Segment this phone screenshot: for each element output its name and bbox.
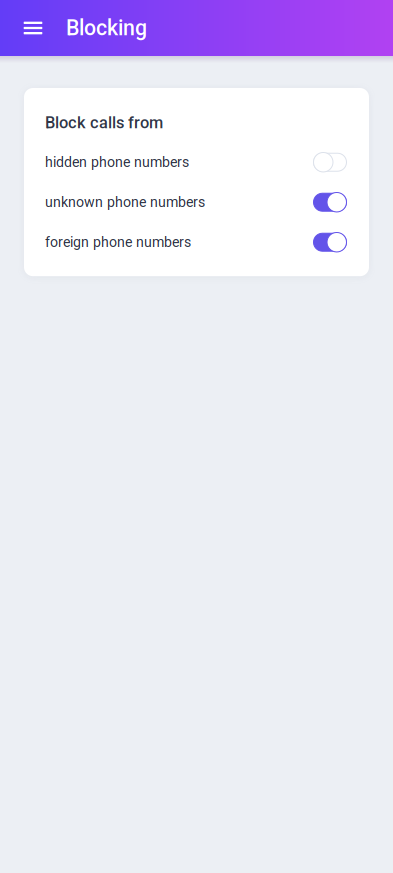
staticText: Blocking	[66, 15, 147, 40]
button[interactable]: Menu	[17, 6, 49, 50]
button[interactable]: unknown phone numbers	[24, 182, 369, 222]
staticText: Block calls from	[45, 113, 163, 132]
staticText: hidden phone numbers	[45, 154, 189, 170]
staticText: unknown phone numbers	[45, 194, 205, 210]
button[interactable]: foreign phone numbers	[24, 222, 369, 262]
staticText: foreign phone numbers	[45, 234, 191, 250]
button[interactable]: hidden phone numbers	[24, 142, 369, 182]
